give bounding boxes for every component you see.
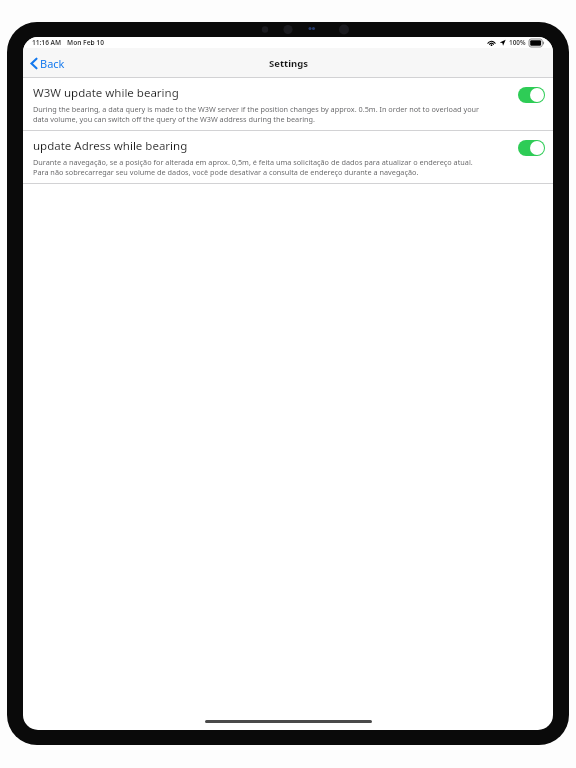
button[interactable]: W3W update while bearing: [23, 78, 553, 130]
staticText: 100%: [509, 38, 526, 47]
button[interactable]: Toggle update Adress while bearing: [518, 140, 545, 156]
button[interactable]: Toggle W3W update while bearing: [518, 87, 545, 103]
staticText: Settings: [269, 57, 308, 70]
staticText: W3W update while bearing: [33, 85, 179, 101]
button[interactable]: update Adress while bearing: [23, 131, 553, 183]
staticText: 11:16 AM: [32, 38, 62, 47]
staticText: Back: [40, 56, 65, 71]
staticText: update Adress while bearing: [33, 138, 188, 154]
staticText: During the bearing, a data query is made…: [33, 104, 480, 124]
staticText: Mon Feb 10: [67, 38, 104, 47]
staticText: Durante a navegação, se a posição for al…: [33, 157, 473, 177]
button[interactable]: Back: [28, 52, 68, 75]
